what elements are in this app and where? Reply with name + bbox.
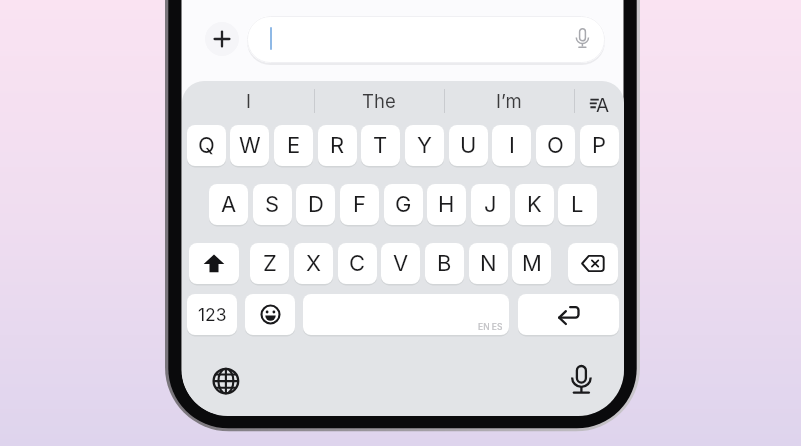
button[interactable] [208,363,243,398]
button[interactable] [518,294,619,335]
staticText: K [527,191,542,218]
button[interactable]: H [427,184,466,225]
button[interactable]: W [230,125,269,166]
staticText: N [480,250,497,277]
staticText: R [330,132,345,159]
button[interactable]: J [471,184,510,225]
staticText: O [547,132,564,159]
staticText: T [373,132,388,159]
staticText: The [362,90,396,112]
button[interactable]: M [512,243,551,284]
button[interactable]: B [425,243,464,284]
staticText: P [592,132,607,159]
staticText: A [221,191,237,218]
staticText: M [522,250,542,277]
button[interactable]: S [253,184,292,225]
button[interactable]: Y [405,125,444,166]
button[interactable]: I [492,125,531,166]
button[interactable]: L [558,184,597,225]
staticText: J [484,191,497,218]
staticText: D [308,191,324,218]
staticText: V [393,250,409,277]
staticText: EN ES [478,322,503,332]
button[interactable]: R [318,125,357,166]
staticText: Q [198,132,215,159]
button[interactable]: N [469,243,508,284]
button[interactable] [568,243,618,284]
button[interactable]: A [209,184,248,225]
staticText: A [596,94,610,113]
button[interactable]: Q [187,125,226,166]
button[interactable]: G [384,184,423,225]
staticText: X [306,250,322,277]
button[interactable]: X [294,243,333,284]
button[interactable]: K [515,184,554,225]
staticText: W [239,132,261,159]
staticText: L [571,191,584,218]
button[interactable]: I’m [449,87,569,114]
staticText: Z [263,250,277,277]
button[interactable]: D [296,184,335,225]
button[interactable]: P [580,125,619,166]
staticText: E [287,132,301,159]
staticText: U [460,132,477,159]
button[interactable]: F [340,184,379,225]
staticText: S [265,191,280,218]
button[interactable]: The [319,87,439,114]
button[interactable] [247,16,605,63]
button[interactable]: O [536,125,575,166]
button[interactable]: T [361,125,400,166]
button[interactable]: EN ES [303,294,509,335]
button[interactable] [189,243,239,284]
staticText: G [395,191,412,218]
staticText: B [437,250,452,277]
staticText: I [246,90,251,112]
button[interactable]: V [381,243,420,284]
button[interactable]: 123 [187,294,237,335]
staticText: I [509,132,515,159]
button[interactable]: U [449,125,488,166]
staticText: C [349,250,366,277]
button[interactable] [567,361,597,397]
button[interactable] [245,294,295,335]
staticText: F [353,191,366,218]
button[interactable]: C [338,243,377,284]
staticText: 123 [198,304,227,325]
button[interactable]: I [188,87,308,114]
button[interactable]: Z [250,243,289,284]
button[interactable]: E [274,125,313,166]
button[interactable] [205,22,239,56]
staticText: I’m [496,90,522,112]
staticText: H [438,191,455,218]
staticText: Y [417,132,432,159]
